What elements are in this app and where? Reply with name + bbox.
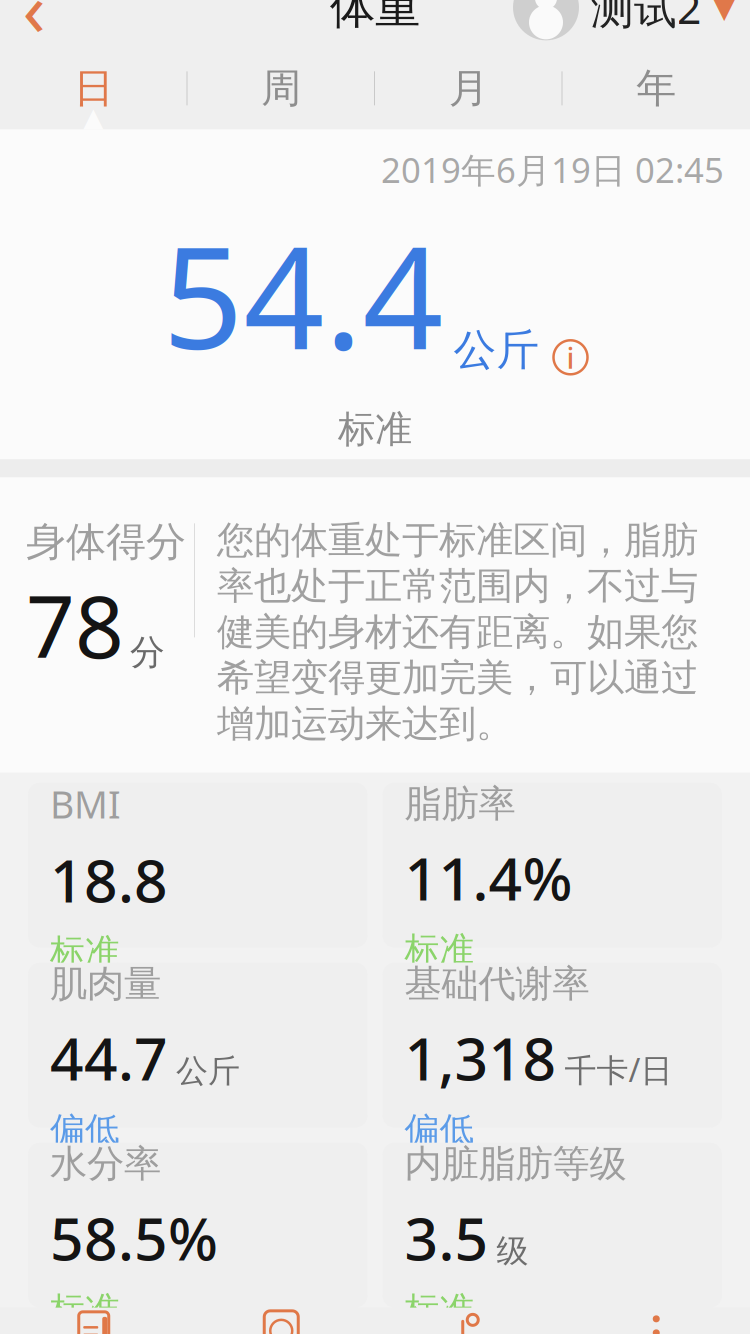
button[interactable]: 肌肉量 [28, 963, 367, 1128]
staticText: 44.7 [50, 1019, 168, 1097]
button[interactable]: 返回 [0, 0, 68, 41]
button[interactable]: 手动输入 [0, 1308, 187, 1334]
staticText: 脂肪率 [404, 781, 515, 827]
staticText: 54.4 [162, 201, 443, 388]
staticText: 基础代谢率 [404, 961, 589, 1007]
button[interactable]: 更多 [562, 1308, 750, 1334]
staticText: 偏低 [404, 1109, 474, 1151]
staticText: 公斤 [453, 324, 539, 376]
button[interactable]: 周 [187, 47, 375, 129]
button[interactable]: 日 [0, 47, 187, 129]
staticText: 78 [26, 568, 124, 682]
staticText: 分 [130, 631, 165, 674]
button[interactable]: 脂肪率 [382, 783, 722, 948]
staticText: 18.8 [50, 841, 168, 919]
staticText: 58.5% [50, 1199, 218, 1277]
staticText: 标准 [404, 929, 474, 971]
staticText: 日 [74, 64, 114, 113]
staticText: 千卡/日 [564, 1048, 672, 1091]
staticText: 1,318 [404, 1019, 556, 1097]
staticText: ‹ [22, 0, 45, 57]
staticText: 周 [261, 64, 301, 113]
staticText: 11.4% [404, 839, 572, 917]
button[interactable]: 体重说明 [539, 340, 587, 388]
staticText: ▼ [713, 0, 736, 24]
staticText: 月 [449, 64, 489, 113]
button[interactable]: 基础代谢率 [382, 963, 722, 1128]
staticText: ▲ [80, 100, 107, 139]
staticText: 身体得分 [26, 517, 186, 566]
button[interactable]: 水分率 [28, 1143, 367, 1308]
staticText: 年 [636, 64, 676, 113]
staticText: BMI [50, 779, 121, 829]
staticText: 测试2 [591, 0, 701, 36]
button[interactable]: 年 [562, 47, 750, 129]
staticText: i [566, 338, 574, 377]
button[interactable]: 分享 [375, 1308, 562, 1334]
staticText: 3.5 [404, 1199, 488, 1277]
staticText: 您的体重处于标准区间，脂肪率也处于正常范围内，不过与健美的身材还有距离。如果您希… [217, 517, 698, 747]
staticText: 体重 [330, 0, 420, 35]
staticText: 标准 [404, 1289, 474, 1331]
button[interactable]: 月 [375, 47, 562, 129]
staticText: 肌肉量 [50, 961, 161, 1007]
button[interactable]: 测试2 [513, 0, 750, 40]
staticText: 水分率 [50, 1141, 161, 1187]
staticText: 偏低 [50, 1109, 120, 1151]
staticText: 标准 [338, 406, 412, 452]
staticText: 标准 [50, 1289, 120, 1331]
staticText: 内脏脂肪等级 [404, 1141, 626, 1187]
staticText: 公斤 [176, 1051, 240, 1091]
staticText: 2019年6月19日 02:45 [381, 147, 724, 193]
button[interactable]: 测量 [187, 1308, 375, 1334]
staticText: 标准 [50, 931, 120, 973]
staticText: 级 [496, 1231, 528, 1271]
button[interactable]: 内脏脂肪等级 [382, 1143, 722, 1308]
button[interactable]: BMI [28, 783, 367, 948]
